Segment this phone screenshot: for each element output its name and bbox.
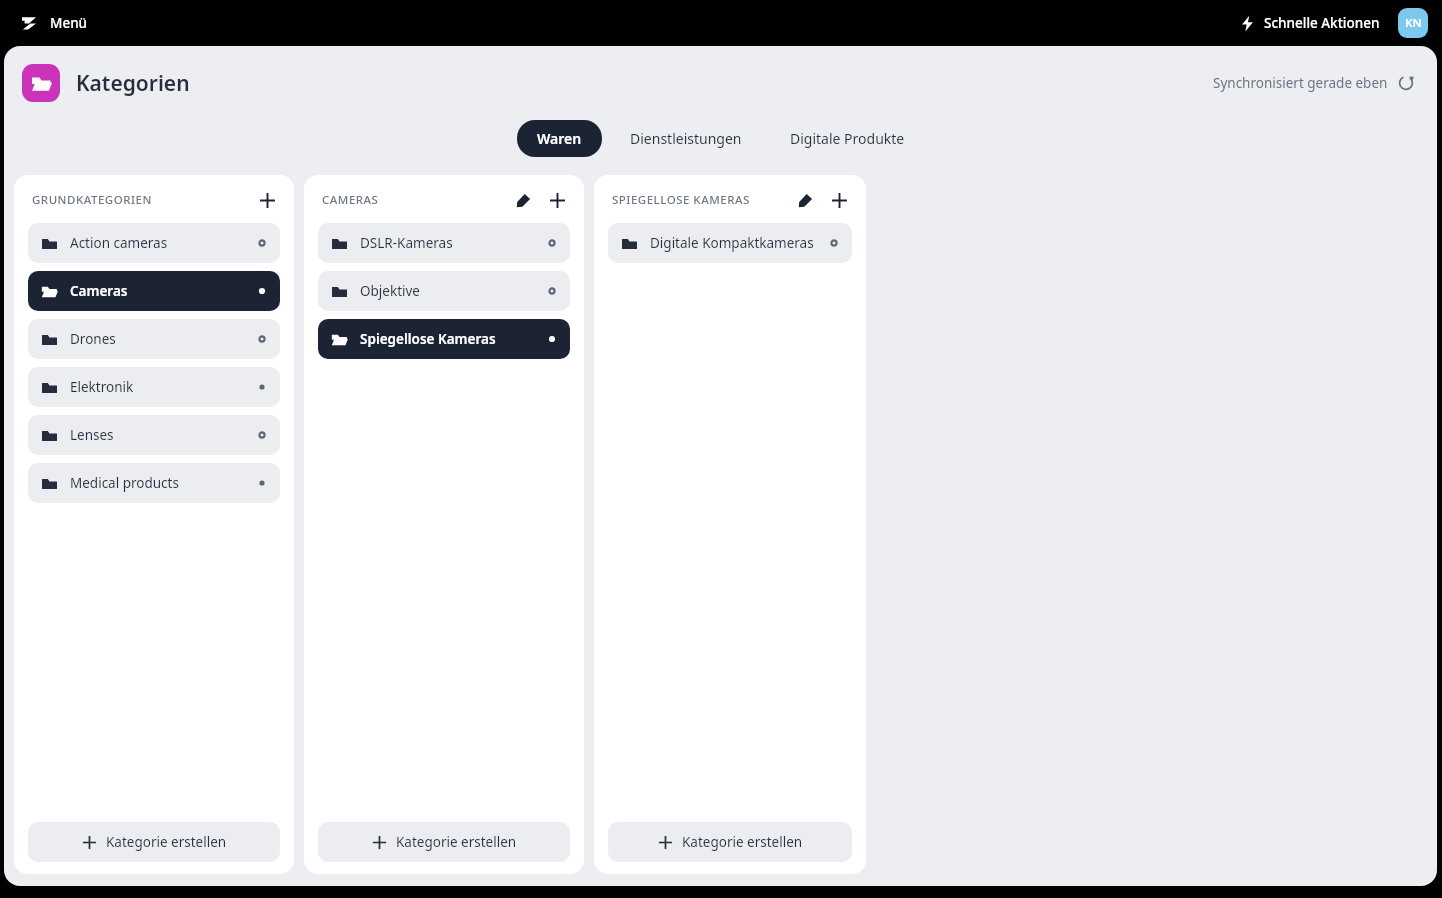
button[interactable]: Bearbeiten	[792, 187, 818, 213]
button[interactable]: Spiegellose Kameras	[318, 319, 570, 359]
staticText: Kategorie erstellen	[396, 833, 517, 851]
button[interactable]: Digitale Produkte	[770, 120, 925, 157]
staticText: GRUNDKATEGORIEN	[32, 192, 152, 208]
button[interactable]: Kategorie erstellen	[28, 822, 280, 862]
button[interactable]: Kategorie erstellen	[608, 822, 852, 862]
staticText: Schnelle Aktionen	[1264, 14, 1380, 32]
button[interactable]: Lenses	[28, 415, 280, 455]
button[interactable]: Hinzufügen	[544, 187, 570, 213]
staticText: SPIEGELLOSE KAMERAS	[612, 192, 750, 208]
staticText: Digitale Kompaktkameras	[650, 234, 814, 252]
button[interactable]: Medical products	[28, 463, 280, 503]
button[interactable]: Waren	[517, 120, 602, 157]
button[interactable]: Objektive	[318, 271, 570, 311]
staticText: Digitale Produkte	[790, 129, 905, 148]
button[interactable]: DSLR-Kameras	[318, 223, 570, 263]
staticText: Synchronisiert gerade eben	[1213, 74, 1388, 92]
staticText: Kategorie erstellen	[682, 833, 803, 851]
staticText: Action cameras	[70, 234, 168, 252]
staticText: Lenses	[70, 426, 114, 444]
button[interactable]: Hinzufügen	[254, 187, 280, 213]
button[interactable]: Digitale Kompaktkameras	[608, 223, 852, 263]
other: Aktualisieren	[1397, 74, 1415, 92]
button[interactable]: Logo	[14, 8, 92, 38]
staticText: Objektive	[360, 282, 420, 300]
button[interactable]: Action cameras	[28, 223, 280, 263]
button[interactable]: Bearbeiten	[510, 187, 536, 213]
button[interactable]: KN	[1398, 8, 1428, 38]
staticText: Cameras	[70, 282, 128, 300]
staticText: CAMERAS	[322, 192, 379, 208]
staticText: Drones	[70, 330, 116, 348]
button[interactable]: Drones	[28, 319, 280, 359]
staticText: Menü	[50, 14, 88, 32]
button[interactable]: Hinzufügen	[826, 187, 852, 213]
button[interactable]: Synchronisiert gerade eben	[1209, 70, 1419, 96]
button[interactable]: Dienstleistungen	[610, 120, 762, 157]
staticText: Spiegellose Kameras	[360, 330, 496, 348]
staticText: Elektronik	[70, 378, 134, 396]
staticText: DSLR-Kameras	[360, 234, 453, 252]
button[interactable]: Elektronik	[28, 367, 280, 407]
button[interactable]: Schnelle Aktionen	[1233, 10, 1386, 36]
staticText: Dienstleistungen	[630, 129, 742, 148]
staticText: Medical products	[70, 474, 179, 492]
staticText: Kategorie erstellen	[106, 833, 227, 851]
button[interactable]: Kategorie erstellen	[318, 822, 570, 862]
button[interactable]: Cameras	[28, 271, 280, 311]
staticText: Kategorien	[76, 69, 190, 98]
staticText: Waren	[537, 129, 582, 148]
staticText: KN	[1405, 15, 1422, 31]
other: Schnelle Aktionen	[1239, 15, 1256, 32]
other: Logo	[18, 12, 40, 34]
